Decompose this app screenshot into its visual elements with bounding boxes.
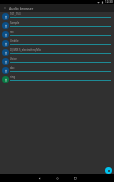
- staticText: Voice: [10, 57, 17, 61]
- staticText: rec: [10, 30, 14, 34]
- staticText: Audio browser: [9, 6, 34, 11]
- button[interactable]: Recent apps: [66, 174, 84, 182]
- button[interactable]: Record: [105, 167, 112, 174]
- staticText: DJ MIX 5_electrofreq Mix: [10, 48, 41, 52]
- staticText: 12:30: [105, 0, 113, 4]
- button[interactable]: Voice: [0, 57, 114, 66]
- button[interactable]: Home: [48, 174, 66, 182]
- button[interactable]: DJ MIX 5_electrofreq Mix: [0, 48, 114, 57]
- button[interactable]: Sample: [0, 21, 114, 30]
- staticText: abc: [10, 66, 15, 70]
- button[interactable]: abc: [0, 66, 114, 75]
- button[interactable]: Back: [30, 174, 48, 182]
- button[interactable]: Untitle: [0, 39, 114, 48]
- button[interactable]: 101_153: [0, 12, 114, 21]
- staticText: ring: [10, 75, 16, 79]
- button[interactable]: Navigate up: [1, 4, 9, 12]
- staticText: Untitle: [10, 39, 19, 43]
- staticText: 101_153: [10, 12, 21, 16]
- button[interactable]: rec: [0, 30, 114, 39]
- button[interactable]: ring: [0, 75, 114, 84]
- staticText: Sample: [10, 21, 20, 25]
